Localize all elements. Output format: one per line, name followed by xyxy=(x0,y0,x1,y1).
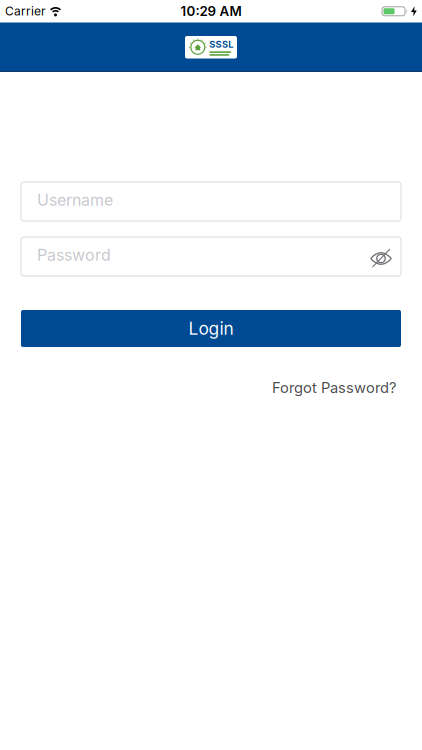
staticText: Forgot Password? xyxy=(272,379,396,396)
button[interactable]: Forgot Password? xyxy=(272,379,396,396)
staticText: Login xyxy=(188,318,233,339)
staticText: Username xyxy=(37,191,113,209)
staticText: Password xyxy=(37,246,111,264)
button[interactable]: Password xyxy=(21,237,401,276)
button[interactable]: Login xyxy=(21,310,401,347)
button[interactable]: Username xyxy=(21,182,401,221)
button[interactable] xyxy=(370,248,392,264)
staticText: Carrier xyxy=(5,4,46,18)
staticText: SSSL xyxy=(209,39,233,50)
staticText: 10:29 AM xyxy=(180,3,241,19)
